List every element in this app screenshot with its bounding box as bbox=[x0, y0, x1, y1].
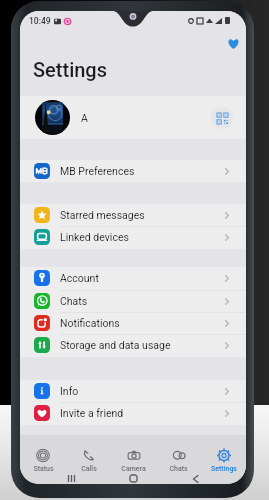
staticText: Invite a friend bbox=[60, 407, 124, 419]
staticText: Settings bbox=[211, 465, 237, 473]
staticText: 10:49 bbox=[29, 16, 51, 26]
button[interactable]: Storage and data usage bbox=[20, 334, 246, 356]
staticText: Account bbox=[60, 272, 99, 284]
staticText: Settings bbox=[33, 58, 108, 81]
staticText: Calls bbox=[81, 465, 97, 473]
button[interactable]: Chats bbox=[20, 290, 246, 312]
staticText: Info bbox=[60, 385, 79, 397]
button[interactable]: My QR code bbox=[211, 107, 233, 129]
button[interactable]: Linked devices bbox=[20, 226, 246, 248]
staticText: Camera bbox=[121, 465, 146, 473]
button[interactable]: Notifications bbox=[20, 312, 246, 334]
button[interactable]: Account bbox=[20, 267, 246, 289]
button[interactable]: A bbox=[20, 96, 246, 139]
staticText: Chats bbox=[169, 465, 188, 473]
button[interactable]: Status bbox=[20, 435, 66, 473]
button[interactable]: Info bbox=[20, 380, 246, 402]
staticText: Notifications bbox=[60, 317, 120, 329]
button[interactable]: Settings bbox=[201, 435, 246, 473]
staticText: Chats bbox=[60, 295, 88, 307]
staticText: Storage and data usage bbox=[60, 339, 171, 351]
button[interactable]: Starred messages bbox=[20, 204, 246, 226]
button[interactable]: Favourites bbox=[223, 33, 243, 53]
staticText: A bbox=[81, 112, 88, 124]
button[interactable]: Chats bbox=[156, 435, 201, 473]
button[interactable]: Calls bbox=[66, 435, 111, 473]
button[interactable]: Back bbox=[184, 473, 206, 484]
button[interactable]: Recent apps bbox=[60, 473, 82, 484]
staticText: MB Preferences bbox=[60, 165, 135, 177]
staticText: Status bbox=[33, 465, 54, 473]
button[interactable]: Invite a friend bbox=[20, 402, 246, 424]
button[interactable]: Camera bbox=[111, 435, 156, 473]
button[interactable]: MB Preferences bbox=[20, 160, 246, 182]
staticText: Linked devices bbox=[60, 231, 129, 243]
button[interactable]: Home bbox=[122, 473, 144, 484]
staticText: Starred messages bbox=[60, 209, 145, 221]
